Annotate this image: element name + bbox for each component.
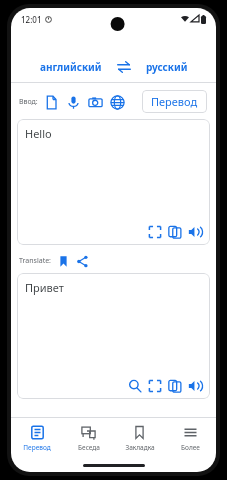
button[interactable]: Привет (17, 273, 210, 399)
button[interactable]: Fullscreen (145, 376, 164, 395)
staticText: Перевод (151, 94, 198, 109)
staticText: Translate: (19, 256, 51, 266)
staticText: русский (146, 60, 188, 74)
staticText: Закладка (125, 443, 155, 452)
staticText: Hello (25, 126, 52, 141)
staticText: Беседа (78, 443, 100, 452)
staticText: Привет (25, 280, 64, 295)
button[interactable]: Fullscreen (145, 222, 164, 241)
staticText: 12:01 (21, 14, 42, 25)
button[interactable]: Hello (17, 119, 210, 245)
button[interactable]: Voice input (63, 92, 83, 112)
button[interactable]: Search (125, 376, 144, 395)
staticText: Перевод (23, 443, 51, 452)
button[interactable]: Website (107, 92, 127, 112)
button[interactable]: Listen (185, 376, 204, 395)
button[interactable]: Copy (165, 376, 184, 395)
staticText: английский (40, 60, 102, 74)
button[interactable]: Listen (185, 222, 204, 241)
button[interactable]: Закладка (114, 418, 165, 458)
button[interactable]: русский (142, 58, 192, 76)
button[interactable]: Copy (165, 222, 184, 241)
button[interactable]: Беседа (63, 418, 114, 458)
button[interactable]: Camera (85, 92, 105, 112)
button[interactable]: Более (165, 418, 216, 458)
button[interactable]: английский (36, 58, 106, 76)
button[interactable]: Document (41, 92, 61, 112)
staticText: Более (181, 443, 200, 452)
button[interactable]: Share (73, 252, 91, 270)
button[interactable]: Swap languages (114, 57, 134, 77)
button[interactable]: Перевод (142, 90, 207, 113)
staticText: Ввод: (19, 97, 38, 107)
button[interactable]: Bookmark (54, 252, 72, 270)
button[interactable]: Перевод (11, 418, 63, 458)
